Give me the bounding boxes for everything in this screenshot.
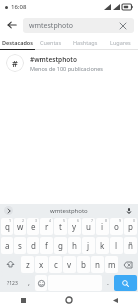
button[interactable]: wmtestphoto <box>23 18 134 33</box>
button[interactable]: 4 <box>40 218 53 235</box>
staticText: n <box>95 259 100 270</box>
staticText: Menos de 100 publicaciones <box>30 65 103 72</box>
button[interactable]: h <box>68 237 81 254</box>
staticText: 1 <box>9 218 12 223</box>
staticText: 4 <box>49 218 52 223</box>
staticText: j <box>87 240 90 251</box>
button[interactable]: 8 <box>96 218 109 235</box>
staticText: g <box>58 240 63 251</box>
staticText: 7 <box>91 218 94 223</box>
button[interactable]: Back <box>4 17 20 33</box>
staticText: 6 <box>77 218 80 223</box>
staticText: 9 <box>119 218 122 223</box>
button[interactable]: Shift <box>1 256 20 273</box>
staticText: q <box>5 221 10 232</box>
button[interactable]: More suggestions <box>4 206 13 215</box>
staticText: t <box>59 221 62 232</box>
staticText: ñ <box>128 240 133 251</box>
staticText: d <box>31 240 36 251</box>
button[interactable]: Lugares <box>103 36 138 49</box>
button[interactable]: , <box>24 275 34 291</box>
staticText: w <box>17 221 24 232</box>
staticText: e <box>31 221 36 232</box>
button[interactable]: f <box>40 237 53 254</box>
button[interactable]: Emoji <box>35 275 47 291</box>
button[interactable]: v <box>63 256 76 273</box>
button[interactable]: 7 <box>82 218 95 235</box>
button[interactable]: wmtestphoto <box>13 204 124 217</box>
staticText: 16:08 <box>11 3 27 11</box>
staticText: ?123 <box>7 280 18 287</box>
button[interactable]: 0 <box>124 218 137 235</box>
button[interactable]: 6 <box>68 218 81 235</box>
button[interactable]: n <box>91 256 104 273</box>
staticText: h <box>72 240 77 251</box>
button[interactable]: a <box>1 237 13 254</box>
staticText: # <box>12 57 18 69</box>
staticText: f <box>45 240 48 251</box>
button[interactable]: z <box>21 256 34 273</box>
staticText: m <box>108 259 116 270</box>
button[interactable]: 3 <box>27 218 39 235</box>
button[interactable]: ?123 <box>1 275 23 291</box>
staticText: . <box>107 278 109 288</box>
staticText: , <box>28 278 30 288</box>
staticText: z <box>26 259 30 270</box>
staticText: r <box>45 221 49 232</box>
staticText: 8 <box>105 218 108 223</box>
staticText: 3 <box>35 218 38 223</box>
button[interactable]: Back <box>92 292 138 308</box>
button[interactable]: d <box>27 237 39 254</box>
button[interactable]: 2 <box>14 218 26 235</box>
staticText: k <box>100 240 105 251</box>
button[interactable]: Destacados <box>0 36 34 49</box>
staticText: Lugares <box>110 39 131 46</box>
button[interactable]: Home <box>46 292 92 308</box>
button[interactable]: Voice input <box>124 206 134 216</box>
button[interactable]: m <box>105 256 118 273</box>
staticText: #wmtestphoto <box>30 55 77 64</box>
staticText: p <box>128 221 133 232</box>
staticText: i <box>101 221 104 232</box>
button[interactable]: Backspace <box>119 256 137 273</box>
staticText: Destacados <box>2 39 33 46</box>
button[interactable]: l <box>110 237 123 254</box>
button[interactable]: 5 <box>54 218 67 235</box>
staticText: o <box>114 221 119 232</box>
staticText: wmtestphoto <box>29 21 74 31</box>
staticText: 0 <box>133 218 136 223</box>
staticText: l <box>115 240 118 251</box>
button[interactable]: Cuentas <box>34 36 68 49</box>
button[interactable]: Recents <box>0 292 46 308</box>
staticText: a <box>5 240 10 251</box>
staticText: y <box>72 221 77 232</box>
button[interactable]: . <box>103 275 113 291</box>
button[interactable]: k <box>96 237 109 254</box>
button[interactable]: 9 <box>110 218 123 235</box>
staticText: b <box>81 259 86 270</box>
button[interactable]: j <box>82 237 95 254</box>
button[interactable]: g <box>54 237 67 254</box>
button[interactable]: 1 <box>1 218 13 235</box>
staticText: wmtestphoto <box>50 207 88 215</box>
staticText: Hashtags <box>73 39 98 46</box>
staticText: 5 <box>63 218 66 223</box>
button[interactable]: x <box>35 256 48 273</box>
button[interactable]: Hashtags <box>68 36 103 49</box>
button[interactable]: c <box>49 256 62 273</box>
staticText: u <box>86 221 91 232</box>
button[interactable]: s <box>14 237 26 254</box>
button[interactable]: Search <box>114 275 137 291</box>
button[interactable]: # <box>0 50 138 76</box>
staticText: 2 <box>22 218 25 223</box>
staticText: s <box>18 240 22 251</box>
staticText: x <box>39 259 44 270</box>
staticText: c <box>54 259 58 270</box>
button[interactable]: b <box>77 256 90 273</box>
staticText: v <box>67 259 72 270</box>
button[interactable]: ñ <box>124 237 137 254</box>
button[interactable]: Clear <box>117 20 128 31</box>
staticText: Cuentas <box>40 39 62 46</box>
